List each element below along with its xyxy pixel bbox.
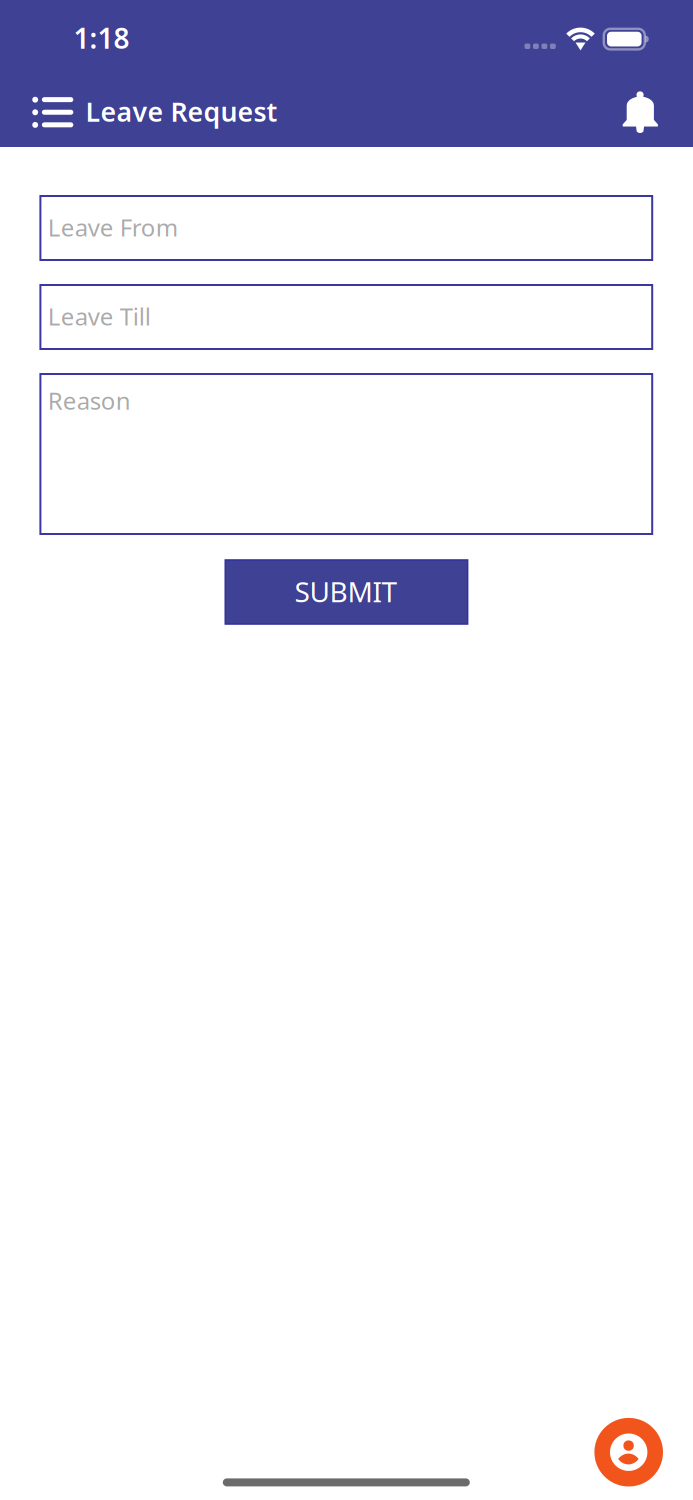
button[interactable]: Leave Till: [40, 285, 652, 349]
button[interactable]: Profile: [594, 1418, 663, 1486]
button[interactable]: Notifications: [606, 78, 675, 147]
button[interactable]: SUBMIT: [225, 560, 468, 624]
button[interactable]: Menu: [17, 77, 89, 146]
staticText: Reason: [48, 384, 131, 416]
button[interactable]: Leave From: [40, 196, 652, 260]
staticText: Leave Till: [48, 300, 151, 332]
staticText: Leave From: [48, 211, 178, 243]
button[interactable]: Reason: [40, 374, 652, 534]
staticText: SUBMIT: [294, 573, 397, 610]
staticText: Leave Request: [85, 94, 277, 129]
staticText: 1:18: [74, 19, 130, 57]
